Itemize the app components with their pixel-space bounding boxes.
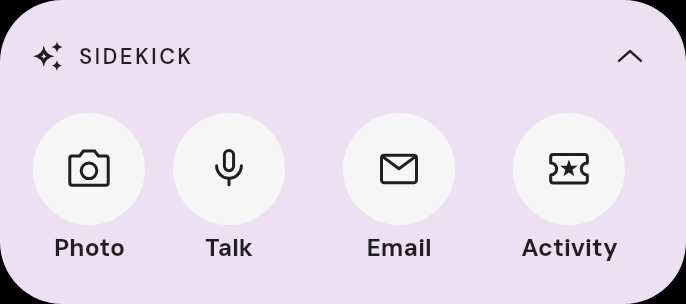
button[interactable]: Talk (161, 113, 297, 264)
button[interactable]: Collapse (608, 34, 652, 78)
staticText: Talk (205, 232, 253, 264)
button[interactable]: Activity (501, 113, 637, 264)
button[interactable]: Email (331, 113, 467, 264)
staticText: Activity (521, 232, 618, 264)
staticText: Email (366, 232, 432, 264)
staticText: SIDEKICK (79, 42, 194, 71)
staticText: Photo (54, 232, 125, 264)
button[interactable]: Photo (21, 113, 157, 264)
